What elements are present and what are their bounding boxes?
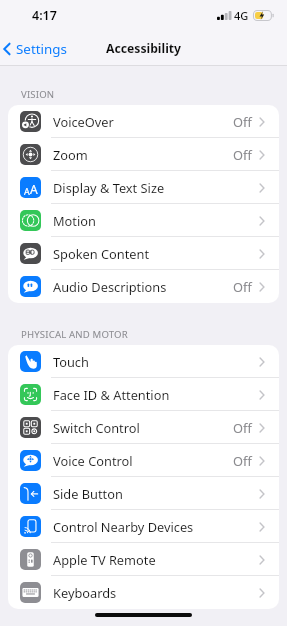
staticText: Control Nearby Devices — [53, 518, 194, 535]
staticText: Voice Control — [53, 452, 133, 469]
button[interactable]: Control Nearby Devices — [8, 510, 279, 543]
button[interactable]: Voice Control — [8, 444, 279, 477]
staticText: A — [24, 185, 30, 197]
button[interactable]: A — [8, 171, 279, 204]
button[interactable]: VoiceOver — [8, 105, 279, 138]
button[interactable]: Touch — [8, 345, 279, 378]
staticText: Side Button — [53, 485, 123, 502]
staticText: Switch Control — [53, 419, 140, 436]
staticText: PHYSICAL AND MOTOR — [21, 328, 128, 341]
staticText: Motion — [53, 212, 96, 229]
staticText: 4:17 — [32, 7, 57, 24]
button[interactable]: Switch Control — [8, 411, 279, 444]
staticText: Keyboards — [53, 584, 117, 601]
staticText: Off — [233, 452, 252, 469]
staticText: Face ID & Attention — [53, 386, 170, 403]
staticText: Apple TV Remote — [53, 551, 156, 568]
staticText: Spoken Content — [53, 245, 150, 262]
staticText: Touch — [53, 353, 89, 370]
staticText: Off — [233, 113, 252, 130]
button[interactable]: Motion — [8, 204, 279, 237]
staticText: Zoom — [53, 146, 88, 163]
staticText: Display & Text Size — [53, 179, 165, 196]
button[interactable]: Settings — [0, 36, 75, 62]
button[interactable]: Spoken Content — [8, 237, 279, 270]
staticText: Settings — [16, 40, 67, 58]
button[interactable]: Side Button — [8, 477, 279, 510]
staticText: Off — [233, 278, 252, 295]
staticText: A — [30, 181, 38, 197]
button[interactable]: Keyboards — [8, 576, 279, 609]
staticText: Audio Descriptions — [53, 278, 167, 295]
staticText: Off — [233, 146, 252, 163]
staticText: Accessibility — [106, 40, 182, 57]
staticText: Off — [233, 419, 252, 436]
button[interactable]: Apple TV Remote — [8, 543, 279, 576]
staticText: VISION — [21, 88, 55, 101]
button[interactable]: Audio Descriptions — [8, 270, 279, 303]
staticText: VoiceOver — [53, 113, 114, 130]
button[interactable]: Zoom — [8, 138, 279, 171]
staticText: 4G — [234, 8, 249, 23]
button[interactable]: Face ID & Attention — [8, 378, 279, 411]
